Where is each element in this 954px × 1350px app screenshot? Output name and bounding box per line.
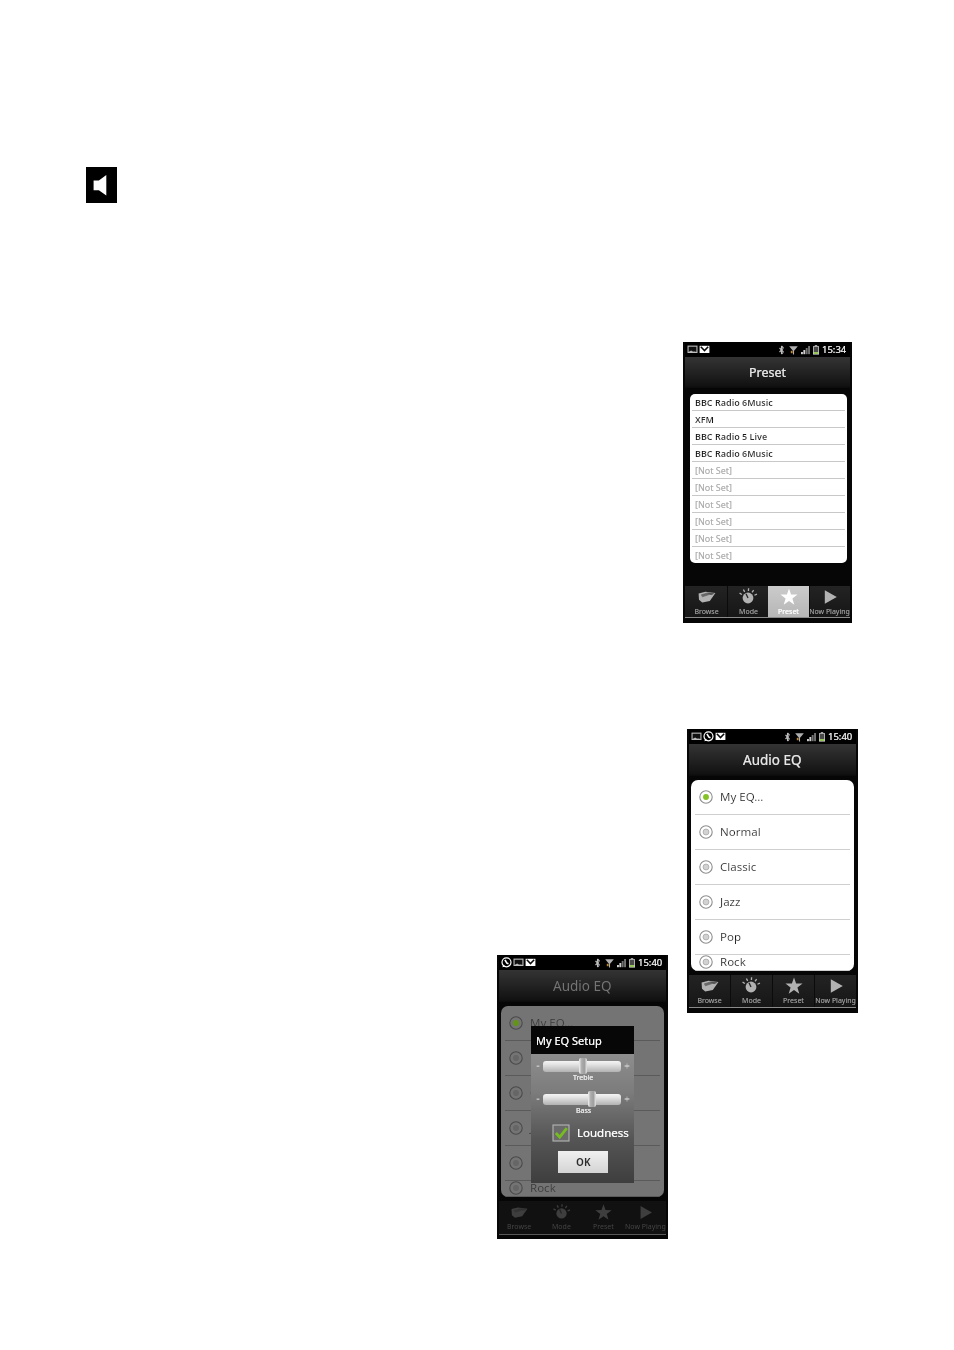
staticText: Rock: [720, 954, 746, 970]
staticText: Preset: [593, 1222, 614, 1232]
staticText: Mode: [742, 996, 761, 1006]
button[interactable]: [Not Set]: [690, 547, 847, 563]
staticText: Mode: [552, 1222, 571, 1232]
staticText: Now Playing: [625, 1222, 666, 1232]
staticText: BBC Radio 6Music: [695, 396, 773, 408]
button[interactable]: Volume: [86, 167, 117, 203]
button[interactable]: Bass: [543, 1091, 621, 1107]
button[interactable]: [Not Set]: [690, 530, 847, 547]
button[interactable]: Treble: [543, 1058, 621, 1074]
button[interactable]: Mode: [540, 1201, 582, 1234]
button[interactable]: [Not Set]: [690, 496, 847, 513]
button[interactable]: My EQ...: [691, 780, 854, 815]
staticText: Preset: [749, 364, 787, 381]
staticText: Pop: [720, 929, 741, 945]
staticText: Browse: [694, 607, 719, 617]
button[interactable]: Preset: [582, 1201, 624, 1234]
staticText: OK: [576, 1155, 591, 1169]
button[interactable]: Normal: [691, 815, 854, 850]
staticText: Loudness: [577, 1125, 629, 1141]
button[interactable]: XFM: [690, 411, 847, 428]
staticText: Mode: [739, 607, 758, 617]
staticText: 15:40: [638, 956, 663, 969]
button[interactable]: Rock: [691, 955, 854, 971]
staticText: Preset: [783, 996, 804, 1006]
button[interactable]: Now Playing: [809, 586, 850, 617]
staticText: BBC Radio 5 Live: [695, 430, 768, 442]
staticText: Now Playing: [809, 607, 850, 617]
staticText: My EQ...: [530, 1015, 574, 1031]
button[interactable]: Pop: [691, 920, 854, 955]
button[interactable]: Browse: [685, 586, 727, 617]
staticText: Browse: [697, 996, 722, 1006]
button[interactable]: [Not Set]: [690, 479, 847, 496]
staticText: Jazz: [720, 894, 741, 910]
staticText: BBC Radio 6Music: [695, 447, 773, 459]
staticText: [Not Set]: [695, 481, 733, 493]
button[interactable]: Now Playing: [624, 1201, 666, 1234]
staticText: Normal: [530, 1050, 571, 1066]
staticText: My EQ Setup: [536, 1033, 602, 1048]
staticText: [Not Set]: [695, 515, 733, 527]
staticText: [Not Set]: [695, 532, 733, 544]
staticText: Rock: [530, 1180, 556, 1196]
button[interactable]: [Not Set]: [690, 462, 847, 479]
staticText: Audio EQ: [553, 977, 612, 995]
button[interactable]: BBC Radio 6Music: [690, 445, 847, 462]
button[interactable]: Jazz: [691, 885, 854, 920]
button[interactable]: Preset: [772, 975, 814, 1007]
staticText: Normal: [720, 824, 761, 840]
button[interactable]: OK: [558, 1151, 608, 1173]
button[interactable]: [Not Set]: [690, 513, 847, 530]
staticText: [Not Set]: [695, 498, 733, 510]
staticText: My EQ...: [720, 789, 764, 805]
staticText: Jazz: [530, 1120, 551, 1136]
button[interactable]: Mode: [727, 586, 768, 617]
staticText: [Not Set]: [695, 549, 733, 561]
staticText: Treble: [573, 1073, 594, 1083]
staticText: Bass: [576, 1106, 592, 1116]
button[interactable]: Loudness toggle: [553, 1125, 569, 1141]
staticText: Classic: [530, 1085, 567, 1101]
staticText: XFM: [695, 413, 714, 425]
staticText: [Not Set]: [695, 464, 733, 476]
staticText: Classic: [720, 859, 757, 875]
staticText: Pop: [530, 1155, 551, 1171]
staticText: 15:34: [822, 343, 847, 356]
staticText: Now Playing: [815, 996, 856, 1006]
button[interactable]: BBC Radio 6Music: [690, 394, 847, 411]
button[interactable]: Browse: [499, 1201, 540, 1234]
button[interactable]: Browse: [689, 975, 730, 1007]
staticText: 15:40: [828, 730, 853, 743]
button[interactable]: Classic: [691, 850, 854, 885]
button[interactable]: Mode: [730, 975, 772, 1007]
staticText: Audio EQ: [743, 751, 802, 769]
button[interactable]: Now Playing: [814, 975, 856, 1007]
button[interactable]: BBC Radio 5 Live: [690, 428, 847, 445]
button[interactable]: Preset: [768, 586, 809, 617]
staticText: Browse: [507, 1222, 532, 1232]
staticText: Preset: [778, 607, 799, 617]
